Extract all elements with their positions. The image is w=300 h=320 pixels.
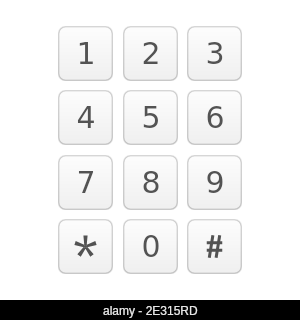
staticText: 4: [76, 100, 96, 135]
button[interactable]: 8: [123, 155, 178, 210]
staticText: 1: [76, 36, 96, 71]
button[interactable]: 2: [123, 26, 178, 81]
button[interactable]: 4: [58, 90, 113, 145]
staticText: 2: [141, 36, 161, 71]
button[interactable]: *: [58, 219, 113, 274]
staticText: 8: [141, 165, 161, 200]
button[interactable]: 1: [58, 26, 113, 81]
staticText: 5: [141, 100, 161, 135]
button[interactable]: 7: [58, 155, 113, 210]
button[interactable]: 3: [187, 26, 242, 81]
button[interactable]: 9: [187, 155, 242, 210]
button[interactable]: 0: [123, 219, 178, 274]
staticText: 3: [205, 36, 225, 71]
button[interactable]: 5: [123, 90, 178, 145]
staticText: 6: [205, 100, 225, 135]
staticText: 7: [76, 165, 96, 200]
staticText: 0: [141, 229, 161, 264]
button[interactable]: alamy - 2E315RD: [0, 300, 300, 320]
staticText: 9: [205, 165, 225, 200]
button[interactable]: 6: [187, 90, 242, 145]
button[interactable]: #: [187, 219, 242, 274]
staticText: alamy - 2E315RD: [103, 304, 198, 317]
